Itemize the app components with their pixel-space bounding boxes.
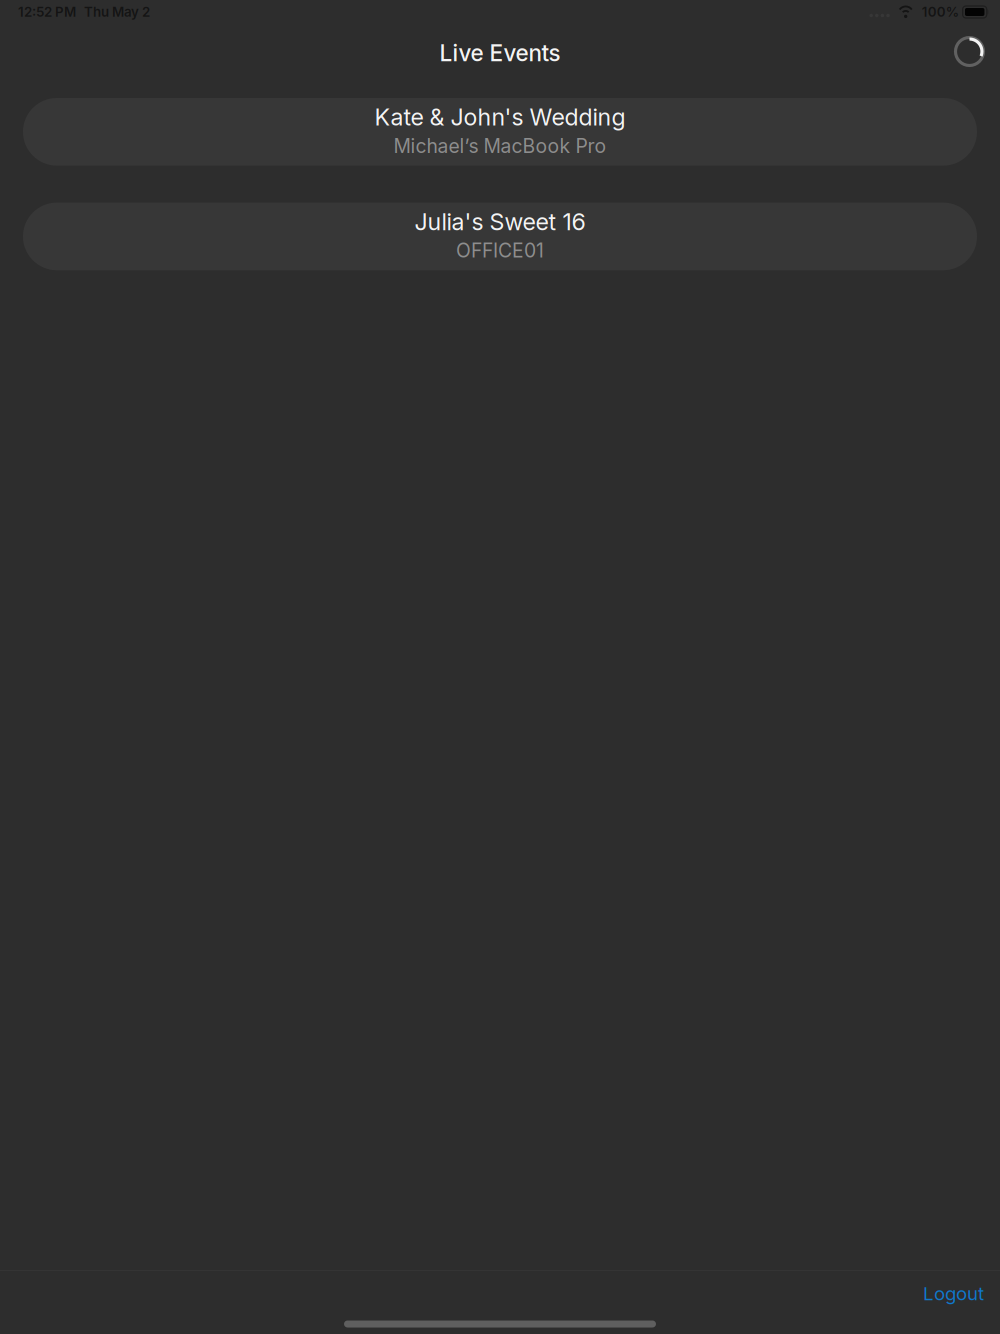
button[interactable]: Kate & John's Wedding bbox=[23, 98, 977, 166]
staticText: Live Events bbox=[439, 39, 560, 67]
staticText: 12:52 PM bbox=[18, 4, 76, 20]
button[interactable]: Julia's Sweet 16 bbox=[23, 203, 977, 270]
staticText: Julia's Sweet 16 bbox=[414, 208, 585, 236]
staticText: 100% bbox=[922, 4, 959, 20]
staticText: Michael’s MacBook Pro bbox=[393, 134, 606, 158]
staticText: OFFICE01 bbox=[456, 239, 544, 262]
button[interactable]: Logout bbox=[911, 1271, 996, 1312]
staticText: Kate & John's Wedding bbox=[374, 103, 625, 131]
staticText: Logout bbox=[923, 1282, 984, 1305]
staticText: Thu May 2 bbox=[84, 4, 150, 20]
button[interactable]: Refreshing bbox=[955, 37, 984, 66]
